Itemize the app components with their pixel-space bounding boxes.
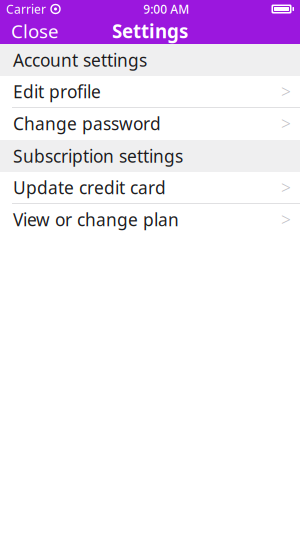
staticText: Change password	[13, 112, 161, 135]
staticText: Edit profile	[13, 80, 101, 103]
button[interactable]: Close	[0, 18, 70, 44]
staticText: 9:00 AM	[143, 1, 189, 17]
staticText: Close	[11, 19, 59, 43]
staticText: >	[281, 176, 291, 199]
staticText: >	[281, 112, 291, 135]
staticText: Settings	[112, 19, 188, 43]
button[interactable]: Update credit card	[0, 172, 300, 204]
staticText: >	[281, 80, 291, 103]
button[interactable]: View or change plan	[0, 204, 300, 236]
staticText: Update credit card	[13, 176, 166, 199]
staticText: Subscription settings	[13, 144, 183, 167]
staticText: Account settings	[13, 48, 147, 71]
staticText: Carrier	[6, 1, 46, 17]
staticText: >	[281, 208, 291, 231]
staticText: View or change plan	[13, 208, 179, 231]
button[interactable]: Edit profile	[0, 76, 300, 108]
button[interactable]: Change password	[0, 108, 300, 140]
